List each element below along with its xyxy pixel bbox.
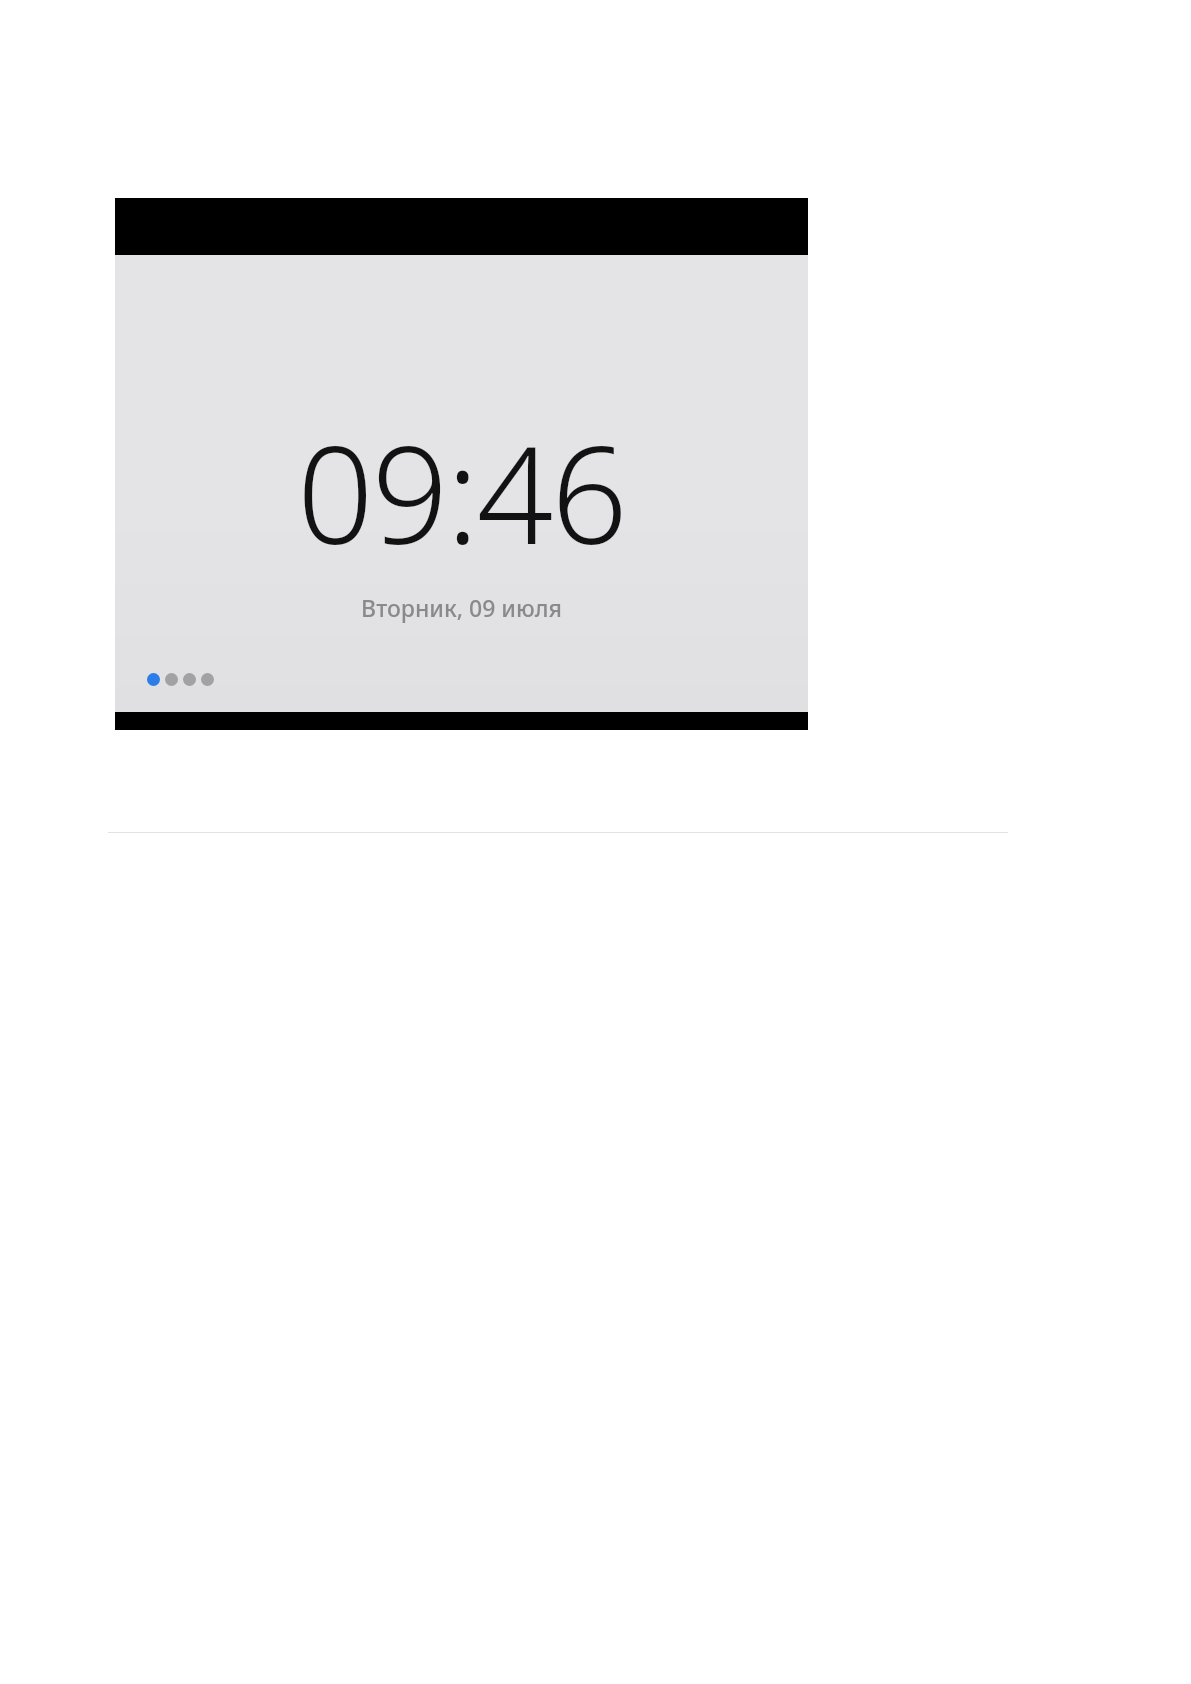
button[interactable]: 09:46	[115, 401, 808, 623]
staticText: 09:46	[297, 401, 626, 584]
button[interactable]: Page indicator	[145, 669, 216, 690]
staticText: Вторник, 09 июля	[361, 592, 562, 623]
